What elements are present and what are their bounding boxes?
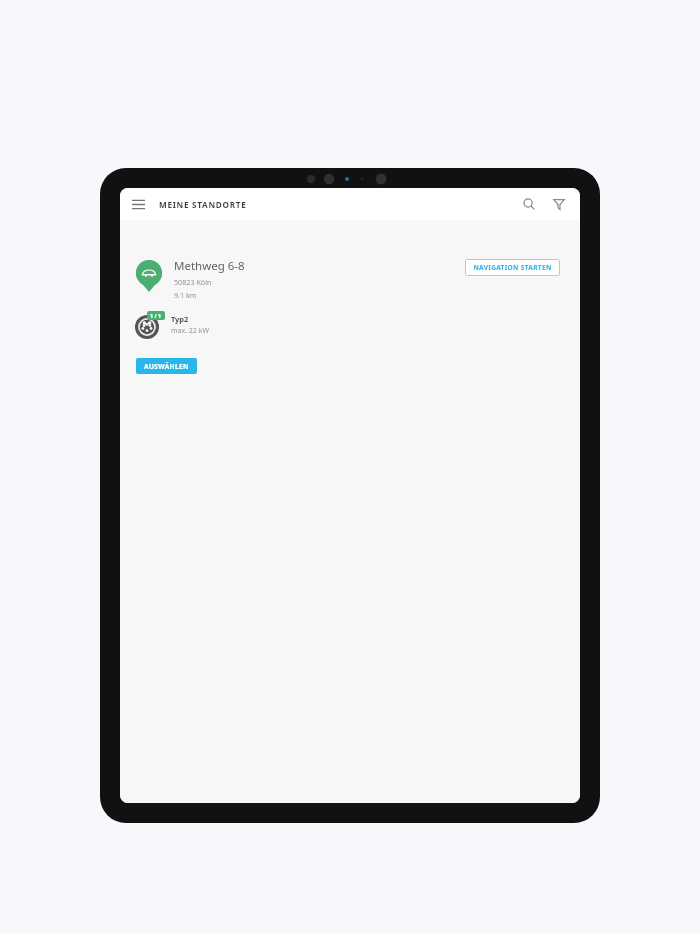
button[interactable]: Suchen	[516, 191, 542, 217]
staticText: Typ2	[171, 314, 189, 324]
staticText: 1 / 1	[150, 312, 162, 319]
staticText: MEINE STANDORTE	[159, 199, 247, 210]
button[interactable]: Filter	[546, 191, 572, 217]
staticText: NAVIGATION STARTEN	[473, 263, 552, 272]
button[interactable]: AUSWÄHLEN	[136, 358, 197, 374]
staticText: max. 22 kW	[171, 326, 209, 336]
staticText: Methweg 6-8	[174, 258, 245, 274]
staticText: 50823 Köln	[174, 277, 212, 287]
button[interactable]: Menü	[126, 192, 150, 216]
staticText: AUSWÄHLEN	[144, 362, 189, 371]
staticText: 9.1 km	[174, 290, 197, 300]
button[interactable]: NAVIGATION STARTEN	[465, 259, 560, 276]
